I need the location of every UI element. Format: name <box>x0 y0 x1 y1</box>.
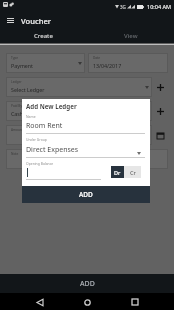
staticText: Amount <box>11 128 24 132</box>
staticText: Payment <box>11 62 34 69</box>
staticText: View <box>124 32 138 40</box>
staticText: Direct Expenses <box>26 145 79 155</box>
button[interactable]: Back <box>32 294 48 310</box>
staticText: Name <box>26 114 36 119</box>
button[interactable]: Pick date <box>152 125 168 145</box>
staticText: Create <box>34 32 53 40</box>
button[interactable]: Paid By <box>6 101 152 121</box>
staticText: ADD <box>80 279 95 289</box>
button[interactable]: Add ledger <box>152 77 168 97</box>
staticText: Under Group <box>26 137 47 142</box>
staticText: Dr <box>114 169 121 176</box>
button[interactable]: View <box>87 29 174 43</box>
button[interactable]: ADD <box>0 274 174 293</box>
staticText: 13/04/2017 <box>93 62 122 69</box>
button[interactable]: Add payment account <box>152 101 168 121</box>
button[interactable]: Open navigation menu <box>4 12 17 29</box>
button[interactable]: ADD <box>22 186 150 203</box>
staticText: Voucher <box>21 16 51 26</box>
staticText: Note <box>11 152 19 156</box>
button[interactable]: Ledger <box>6 77 152 97</box>
staticText: Ledger <box>11 80 22 84</box>
button[interactable]: Amount <box>6 125 152 145</box>
button[interactable]: Note <box>6 149 168 169</box>
staticText: Cr <box>130 169 136 176</box>
staticText: Cash <box>11 110 24 117</box>
button[interactable]: Type <box>6 53 85 73</box>
staticText: ADD <box>79 190 93 199</box>
staticText: Paid By <box>11 104 23 108</box>
staticText: Add New Ledger <box>26 102 77 110</box>
button[interactable]: Dr <box>111 166 124 178</box>
button[interactable]: Home <box>79 294 95 310</box>
button[interactable]: Cr <box>124 166 141 178</box>
staticText: 10:04 AM <box>147 3 171 10</box>
staticText: Date <box>93 56 101 60</box>
button[interactable]: Create <box>0 29 87 43</box>
staticText: Select Ledger <box>11 86 45 93</box>
button[interactable]: Recent apps <box>127 294 143 310</box>
staticText: 3G <box>120 4 126 10</box>
button[interactable]: Date <box>88 53 168 73</box>
staticText: Type <box>11 56 19 60</box>
staticText: Opening Balance <box>26 161 54 166</box>
staticText: Room Rent <box>26 121 63 131</box>
